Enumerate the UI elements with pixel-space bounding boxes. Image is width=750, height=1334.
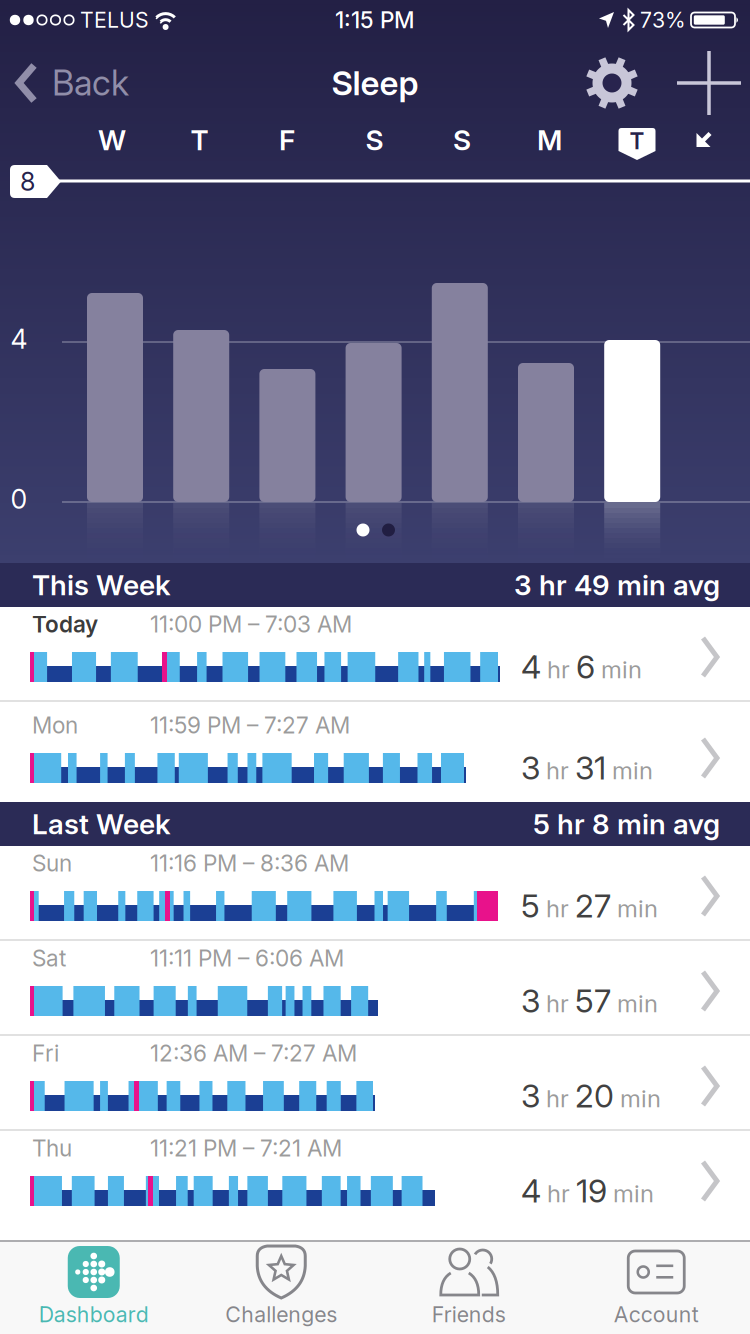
- staticText: 6: [576, 648, 595, 686]
- staticText: 3: [521, 982, 540, 1020]
- staticText: min: [617, 894, 658, 923]
- staticText: hr: [546, 894, 569, 923]
- staticText: Account: [614, 1302, 699, 1327]
- staticText: 19: [576, 1172, 607, 1210]
- staticText: 3 hr 49 min avg: [514, 568, 720, 601]
- staticText: 11:21 PM – 7:21 AM: [150, 1135, 342, 1162]
- staticText: 57: [575, 982, 611, 1020]
- staticText: 11:00 PM – 7:03 AM: [150, 611, 352, 638]
- staticText: Sun: [32, 850, 72, 877]
- staticText: min: [620, 1084, 661, 1113]
- staticText: min: [617, 989, 658, 1018]
- staticText: S: [453, 123, 471, 156]
- staticText: 31: [575, 749, 606, 787]
- staticText: hr: [546, 989, 569, 1018]
- staticText: 5: [521, 887, 540, 925]
- staticText: min: [613, 1179, 654, 1208]
- staticText: min: [612, 756, 653, 785]
- staticText: Dashboard: [39, 1302, 149, 1327]
- staticText: Sat: [32, 945, 66, 972]
- staticText: hr: [546, 1084, 569, 1113]
- staticText: 12:36 AM – 7:27 AM: [150, 1040, 357, 1067]
- staticText: 1:15 PM: [335, 7, 415, 33]
- staticText: 3: [521, 749, 540, 787]
- staticText: T: [629, 128, 644, 154]
- staticText: min: [601, 655, 642, 684]
- staticText: Today: [32, 611, 98, 638]
- staticText: 4: [10, 323, 27, 355]
- staticText: hr: [547, 1179, 570, 1208]
- staticText: 4: [521, 648, 541, 686]
- staticText: 3: [521, 1077, 540, 1115]
- staticText: hr: [546, 756, 569, 785]
- staticText: 73%: [640, 7, 686, 33]
- staticText: 11:11 PM – 6:06 AM: [150, 945, 344, 972]
- staticText: 11:59 PM – 7:27 AM: [150, 712, 350, 739]
- staticText: 8: [20, 167, 35, 196]
- staticText: 11:16 PM – 8:36 AM: [150, 850, 349, 877]
- staticText: Last Week: [32, 807, 171, 840]
- staticText: 4: [521, 1172, 541, 1210]
- staticText: Thu: [32, 1135, 72, 1162]
- staticText: 0: [10, 483, 27, 515]
- staticText: TELUS: [80, 7, 149, 33]
- staticText: F: [279, 123, 295, 156]
- staticText: Challenges: [225, 1302, 337, 1327]
- staticText: Mon: [32, 712, 78, 739]
- staticText: hr: [547, 655, 570, 684]
- staticText: S: [365, 123, 383, 156]
- staticText: Back: [52, 63, 129, 103]
- staticText: 27: [575, 887, 611, 925]
- staticText: W: [98, 123, 126, 156]
- staticText: M: [537, 123, 562, 156]
- staticText: Sleep: [331, 63, 418, 103]
- staticText: Friends: [432, 1302, 506, 1327]
- staticText: 20: [575, 1077, 614, 1115]
- staticText: Fri: [32, 1040, 59, 1067]
- staticText: This Week: [32, 568, 171, 601]
- staticText: T: [190, 123, 208, 156]
- staticText: 5 hr 8 min avg: [533, 807, 720, 840]
